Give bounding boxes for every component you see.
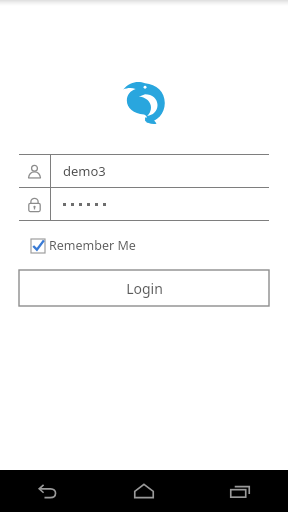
button[interactable]: Back (0, 470, 96, 512)
other: App logo (118, 76, 170, 128)
button[interactable]: Login (19, 270, 269, 306)
other: Password (27, 197, 42, 212)
button[interactable]: Home (96, 470, 192, 512)
staticText: demo3 (63, 162, 106, 180)
button[interactable]: Remember Me (31, 237, 136, 254)
button[interactable]: Recent apps (192, 470, 288, 512)
staticText: Login (126, 279, 163, 298)
other: Username (27, 164, 42, 179)
staticText: Remember Me (49, 237, 136, 254)
button[interactable]: Password (19, 188, 269, 220)
button[interactable]: Username (19, 155, 269, 187)
